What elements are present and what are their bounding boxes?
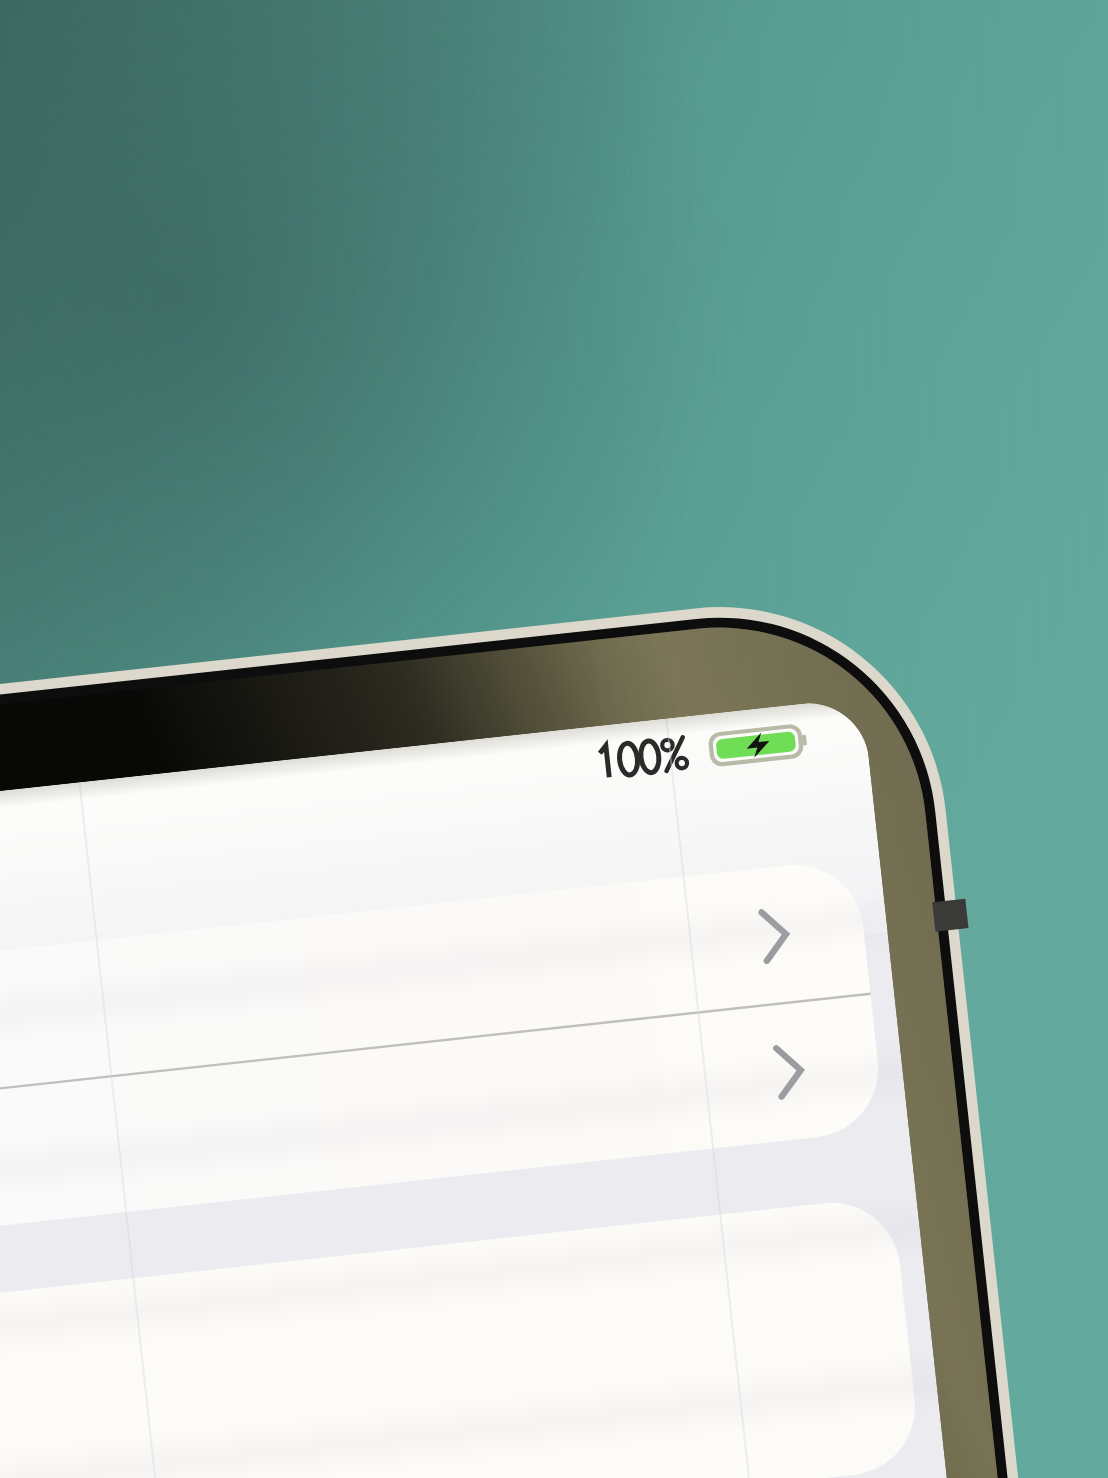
other: Photo of device corner showing 100% batt… bbox=[0, 0, 1108, 1478]
